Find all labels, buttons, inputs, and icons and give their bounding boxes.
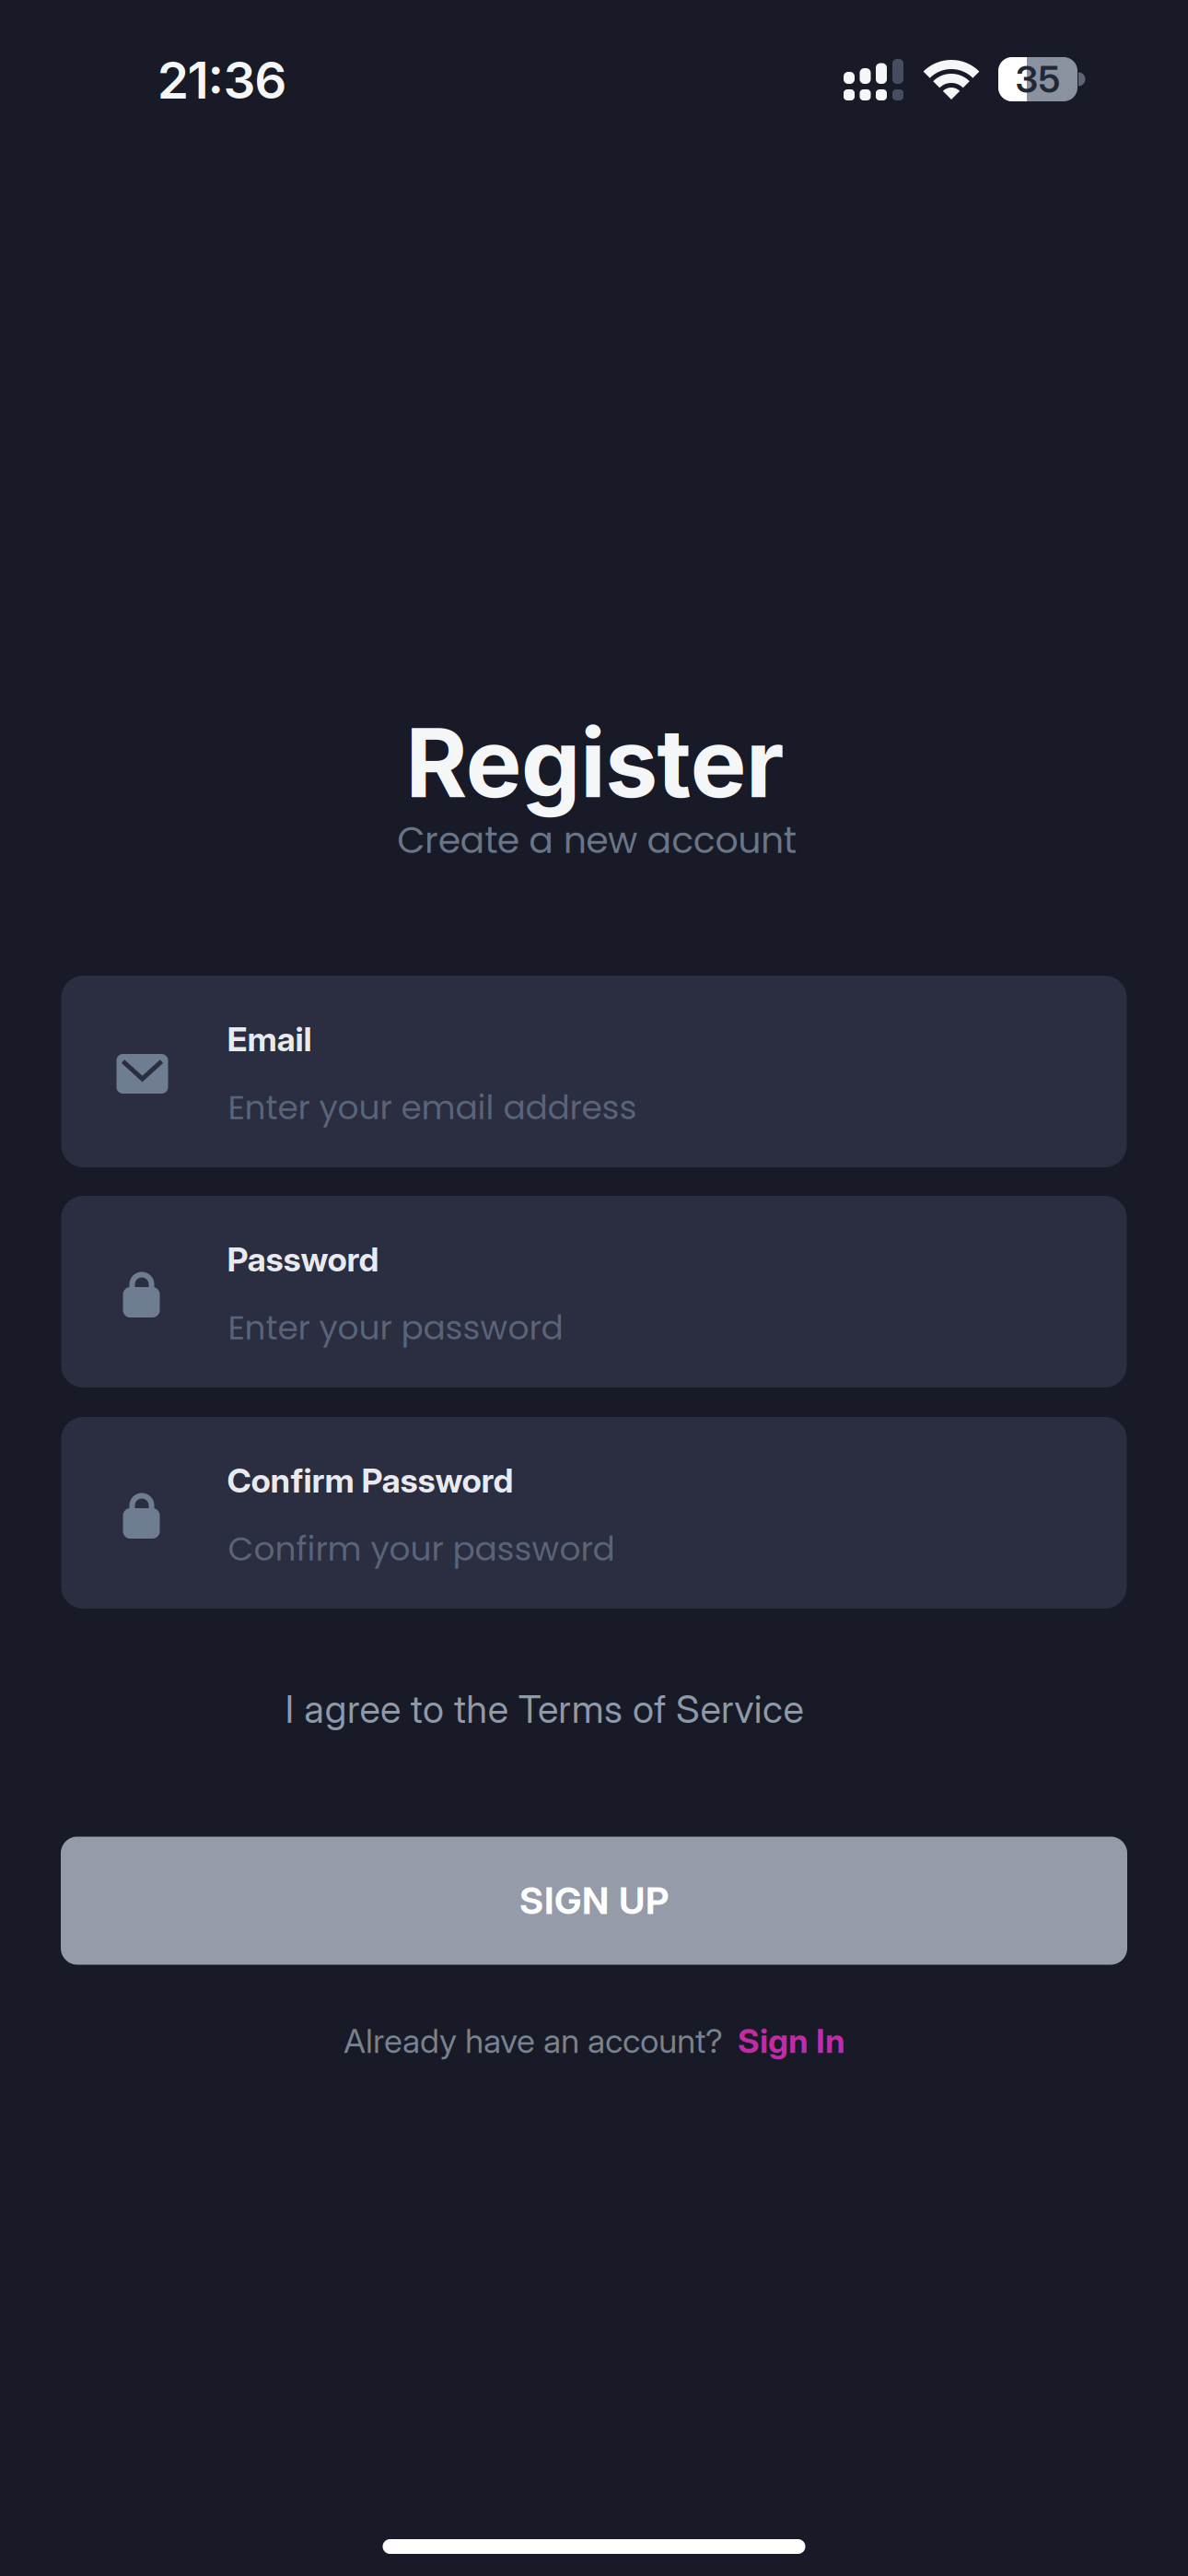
staticText: 21:36 xyxy=(157,49,287,111)
button[interactable]: SIGN UP xyxy=(61,1837,1127,1965)
button[interactable]: Password xyxy=(61,1196,1127,1388)
staticText: Password xyxy=(227,1239,379,1280)
button[interactable]: Sign In xyxy=(738,2021,845,2061)
staticText: Create a new account xyxy=(397,815,796,866)
button[interactable]: I agree to the Terms of Service xyxy=(285,1686,804,1732)
staticText: Email xyxy=(227,1019,312,1059)
staticText: Confirm Password xyxy=(227,1460,513,1501)
staticText: Already have an account? xyxy=(344,2021,723,2061)
button[interactable]: Confirm Password xyxy=(61,1417,1127,1609)
staticText: Enter your password xyxy=(228,1305,563,1351)
staticText: I agree to the Terms of Service xyxy=(285,1686,804,1732)
staticText: Enter your email address xyxy=(228,1084,637,1131)
staticText: Confirm your password xyxy=(228,1526,615,1572)
staticText: SIGN UP xyxy=(519,1878,669,1923)
staticText: Sign In xyxy=(738,2021,845,2061)
button[interactable]: Email xyxy=(61,976,1127,1167)
staticText: Register xyxy=(405,706,784,820)
staticText: 35 xyxy=(1015,57,1060,102)
